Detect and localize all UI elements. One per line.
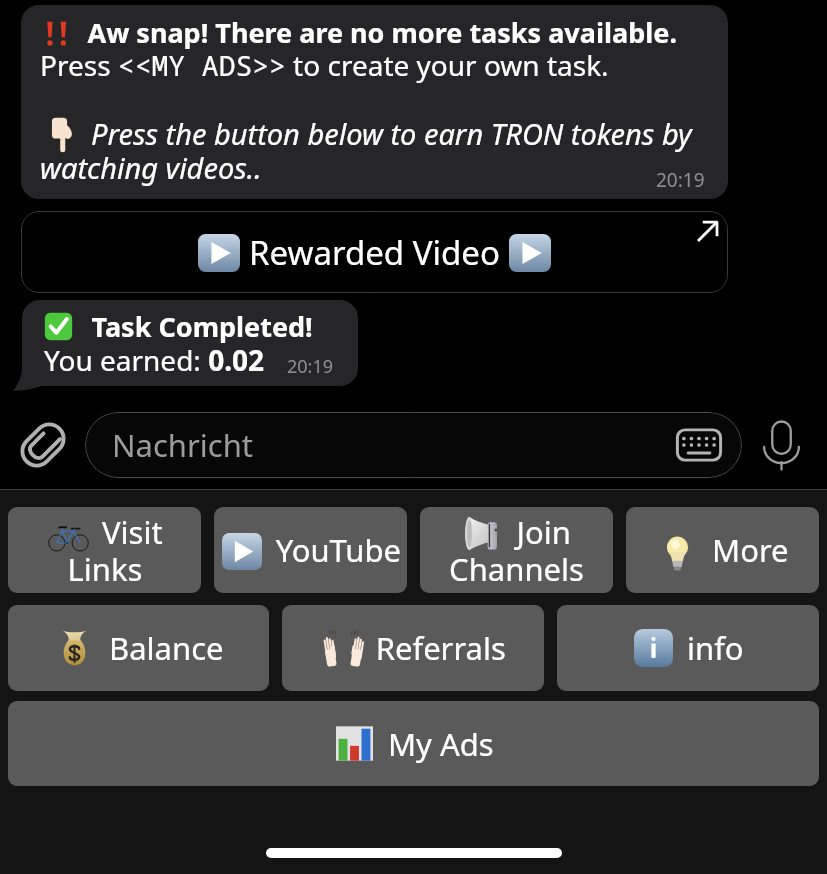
- staticText: Rewarded Video: [249, 230, 500, 275]
- staticText: Join Channels: [449, 511, 584, 590]
- button[interactable]: Nachricht: [85, 412, 742, 478]
- staticText: Nachricht: [112, 424, 254, 466]
- button[interactable]: YouTube: [214, 507, 407, 593]
- staticText: Balance: [54, 627, 224, 669]
- button[interactable]: My Ads: [8, 701, 819, 786]
- button[interactable]: More: [626, 507, 819, 593]
- button[interactable]: Attach file: [16, 418, 70, 472]
- other: Open link: [695, 219, 720, 244]
- button[interactable]: Referrals: [282, 605, 544, 691]
- button[interactable]: Join Channels: [420, 507, 613, 593]
- staticText: My Ads: [333, 723, 494, 765]
- staticText: YouTube: [221, 529, 401, 571]
- staticText: 20:19: [287, 354, 334, 379]
- staticText: Aw snap! There are no more tasks availab…: [40, 14, 678, 84]
- button[interactable]: Visit Links: [8, 507, 201, 593]
- staticText: Press the button below to earn TRON toke…: [40, 114, 718, 187]
- button[interactable]: Voice message: [756, 417, 806, 473]
- button[interactable]: Rewarded Video: [21, 211, 728, 293]
- staticText: Referrals: [321, 627, 506, 669]
- other: Keyboard: [672, 418, 726, 472]
- staticText: More: [657, 529, 789, 571]
- staticText: info: [632, 627, 744, 669]
- staticText: Task Completed! You earned: 0.02: [44, 308, 313, 379]
- staticText: Visit Links: [47, 511, 163, 590]
- button[interactable]: info: [557, 605, 819, 691]
- staticText: 20:19: [656, 167, 705, 193]
- button[interactable]: Balance: [8, 605, 269, 691]
